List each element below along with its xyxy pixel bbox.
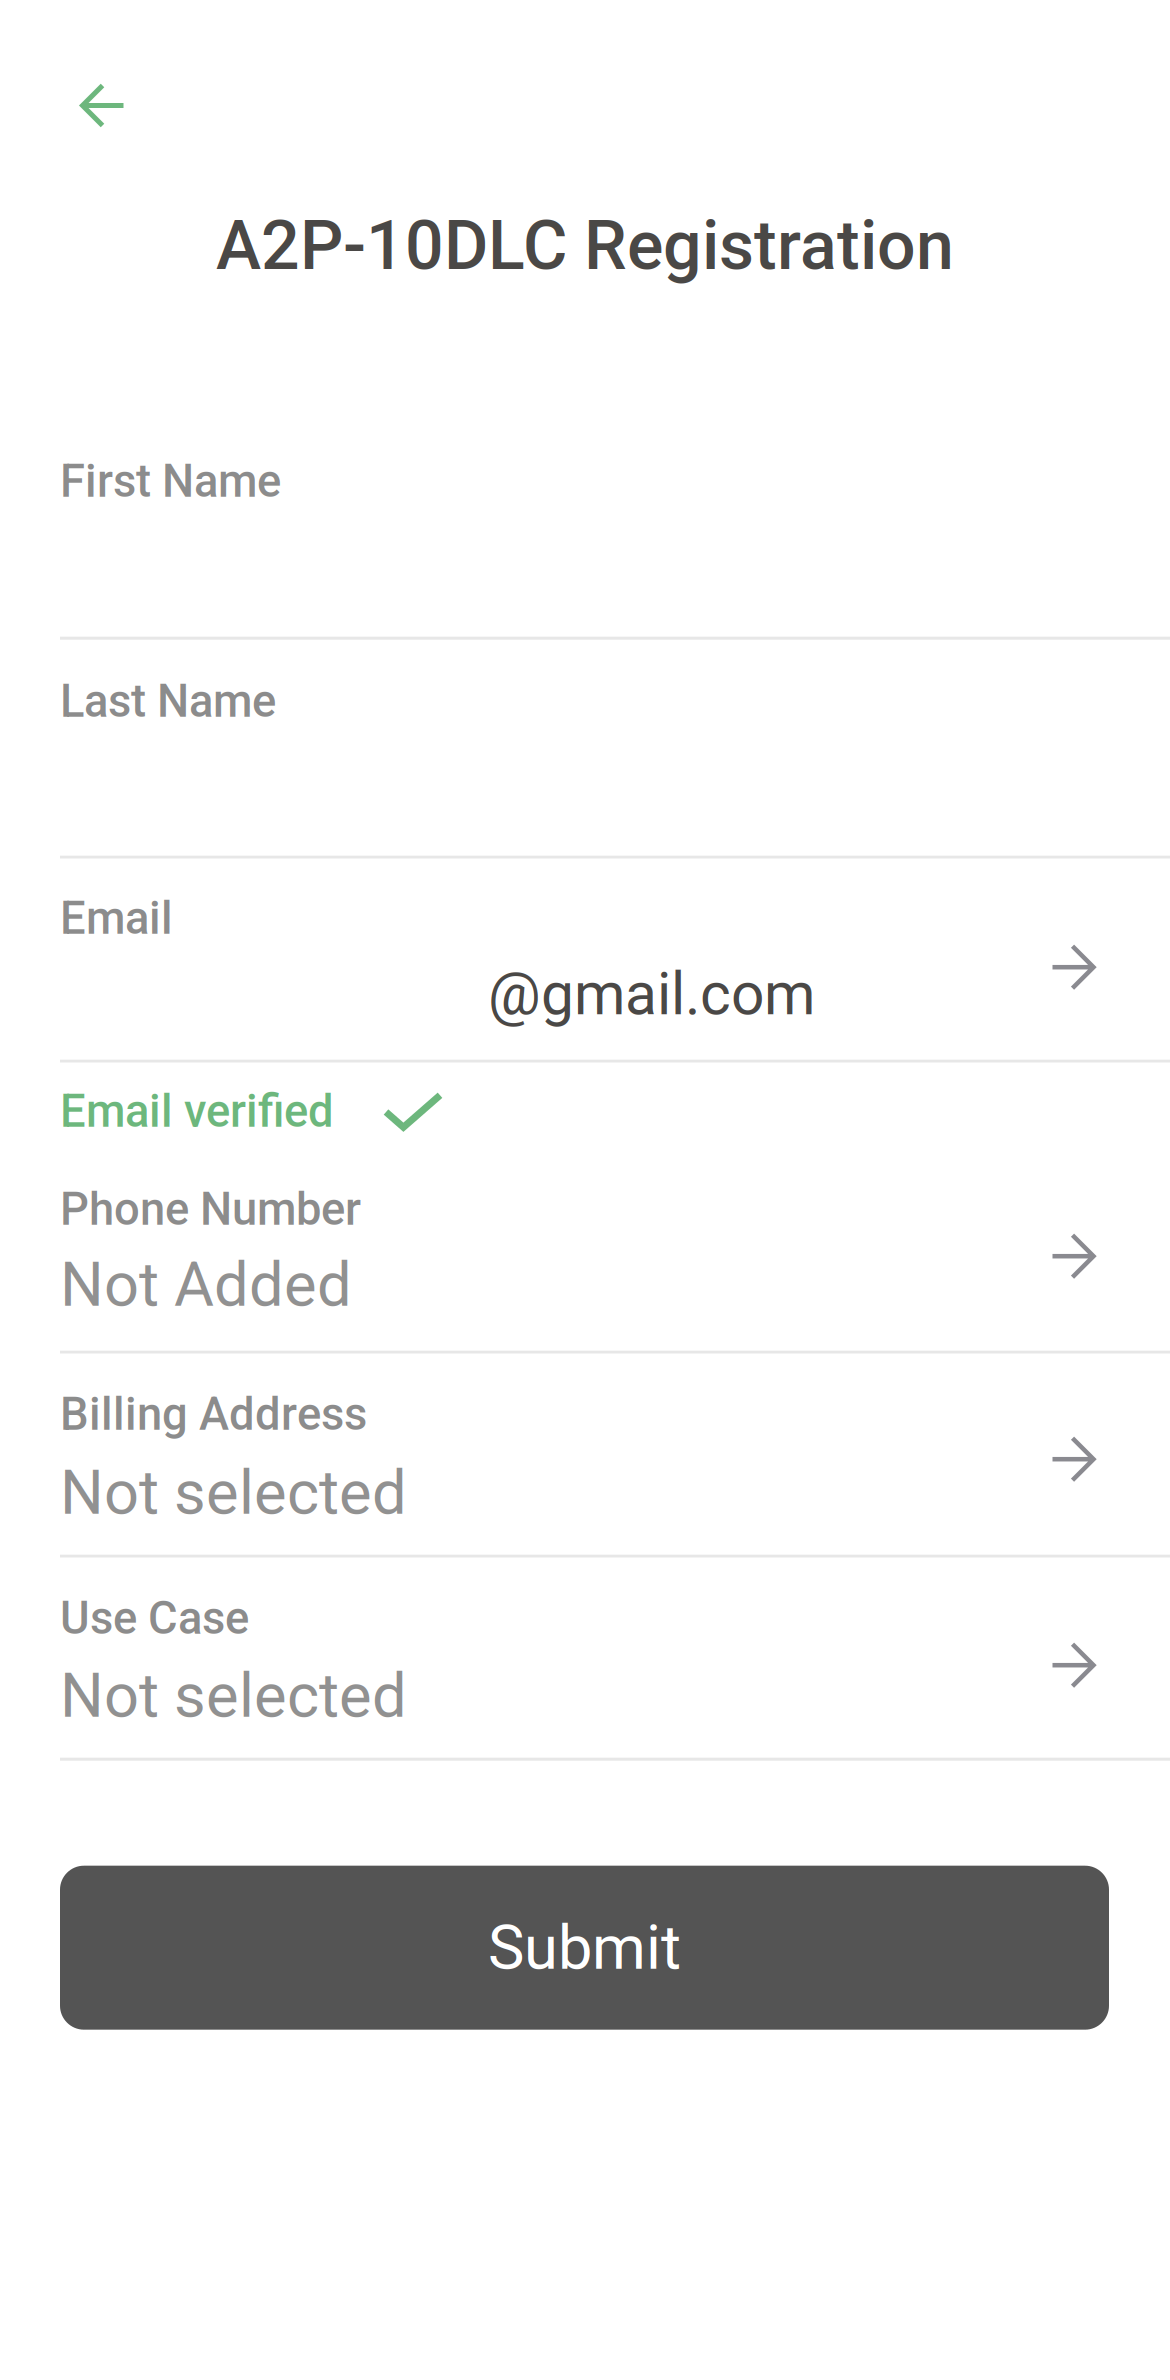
button[interactable]: Use Case — [0, 1558, 1170, 1758]
staticText: Phone Number — [60, 1183, 361, 1236]
staticText: Not selected — [60, 1660, 407, 1732]
staticText: A2P-10DLC Registration — [216, 206, 954, 286]
button[interactable]: Back — [0, 0, 165, 168]
button[interactable]: Email — [0, 859, 1170, 1060]
button[interactable]: Billing Address — [0, 1354, 1170, 1555]
staticText: @gmail.com — [488, 960, 815, 1029]
staticText: Billing Address — [60, 1388, 367, 1441]
staticText: Submit — [488, 1912, 681, 1984]
button[interactable]: First Name — [0, 418, 1170, 637]
button[interactable]: Last Name — [0, 640, 1170, 856]
staticText: Last Name — [60, 675, 276, 728]
staticText: Not selected — [60, 1457, 407, 1529]
staticText: First Name — [60, 455, 281, 508]
staticText: Use Case — [60, 1592, 249, 1645]
button[interactable]: Phone Number — [0, 1175, 1170, 1351]
staticText: Not Added — [60, 1249, 352, 1321]
staticText: Email — [60, 892, 173, 945]
staticText: Email verified — [60, 1085, 334, 1138]
button[interactable]: Submit — [60, 1866, 1109, 2030]
